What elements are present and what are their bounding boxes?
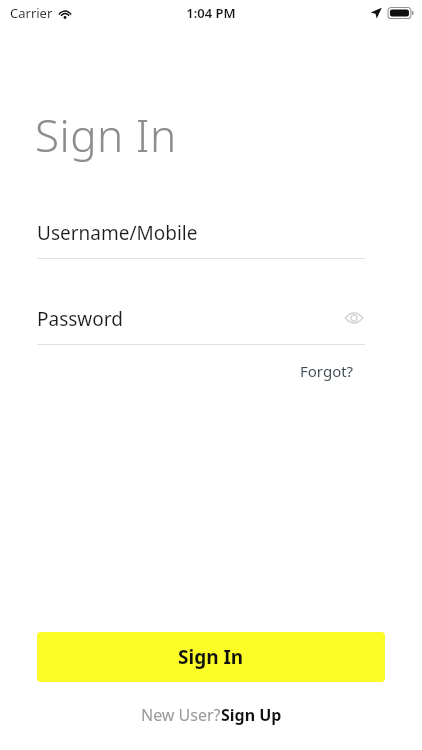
staticText: Sign Up	[221, 704, 282, 726]
staticText: Carrier	[10, 4, 53, 22]
staticText: 1:04 PM	[186, 4, 236, 22]
button[interactable]: Show password	[340, 304, 368, 332]
staticText: New User?	[141, 704, 221, 726]
staticText: Forgot?	[300, 361, 354, 381]
button[interactable]: Forgot?	[296, 359, 358, 383]
staticText: Sign In	[35, 105, 177, 165]
staticText: Sign In	[178, 644, 244, 670]
button[interactable]: Sign In	[37, 632, 385, 682]
staticText: Username/Mobile	[37, 220, 198, 246]
staticText: Password	[37, 306, 123, 332]
button[interactable]: Sign Up	[221, 704, 282, 726]
